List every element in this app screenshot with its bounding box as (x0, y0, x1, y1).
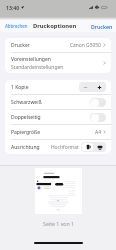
button[interactable]: Abbrechen (0, 20, 32, 32)
staticText: Druckoptionen (33, 22, 77, 30)
button[interactable]: Doppelseitig (5, 110, 111, 124)
button[interactable]: Decrease copies (79, 82, 92, 92)
staticText: Seite 1 von 1 (43, 220, 74, 227)
staticText: A4 (95, 129, 101, 136)
button[interactable]: Voreinstellungen (5, 53, 111, 73)
staticText: Papiergröße (11, 129, 41, 136)
button[interactable]: Drucken (87, 20, 116, 32)
staticText: 13:40 (6, 4, 20, 11)
button[interactable]: Papiergröße (5, 125, 111, 139)
staticText: Hochformat (51, 144, 79, 151)
button[interactable]: Drucker (5, 38, 111, 52)
button[interactable]: Landscape (94, 143, 105, 151)
staticText: Standardeinstellungen (11, 64, 64, 71)
button[interactable]: Schwarzweiß (5, 95, 111, 109)
button[interactable]: Toggle (90, 98, 106, 107)
staticText: Ausrichtung (11, 144, 40, 151)
button[interactable]: 1 Kopie (5, 80, 111, 94)
staticText: Voreinstellungen (11, 56, 51, 63)
button[interactable]: Ausrichtung (5, 140, 111, 154)
staticText: Schwarzweiß (11, 99, 42, 106)
button[interactable]: Increase copies (92, 82, 106, 92)
staticText: Drucken (91, 23, 113, 30)
staticText: Abbrechen (5, 23, 28, 29)
staticText: Drucker (11, 42, 30, 49)
staticText: 1 Kopie (11, 84, 29, 91)
staticText: Doppelseitig (11, 114, 41, 121)
button[interactable]: Toggle (90, 113, 106, 122)
button[interactable]: Portrait (82, 143, 93, 151)
staticText: Canon G5050 (70, 42, 101, 49)
